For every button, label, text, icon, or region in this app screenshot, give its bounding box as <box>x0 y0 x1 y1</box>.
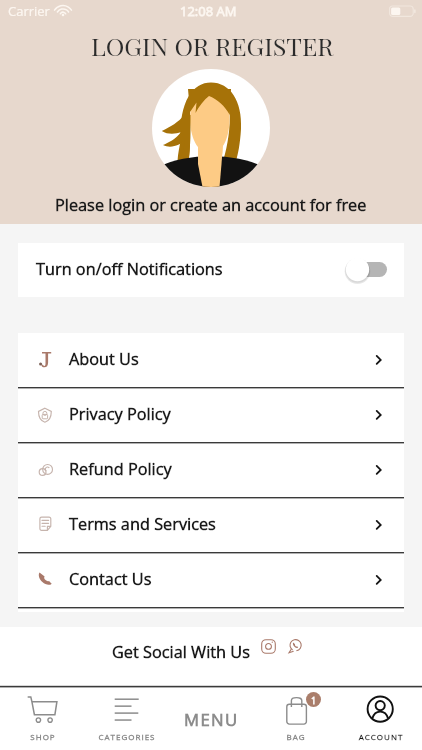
staticText: Please login or create an account for fr… <box>55 194 367 216</box>
button[interactable]: Privacy Policy <box>18 388 404 443</box>
button[interactable]: Instagram <box>261 639 276 654</box>
staticText: Carrier <box>8 2 50 20</box>
staticText: Turn on/off Notifications <box>36 258 223 280</box>
staticText: 1 <box>311 694 317 706</box>
button[interactable]: Refund Policy <box>18 443 404 498</box>
button[interactable]: Contact Us <box>18 553 404 608</box>
button[interactable]: WhatsApp <box>288 639 302 653</box>
staticText: ACCOUNT <box>339 731 422 742</box>
staticText: 12:08 AM <box>180 2 237 20</box>
staticText: SHOP <box>1 731 85 742</box>
staticText: About Us <box>69 348 139 370</box>
button[interactable]: MENU <box>169 685 253 750</box>
staticText: BAG <box>254 731 338 742</box>
staticText: LOGIN OR REGISTER <box>91 29 334 62</box>
button[interactable]: Turn on/off Notifications <box>18 243 404 297</box>
staticText: Get Social With Us <box>112 641 250 663</box>
button[interactable]: Notifications toggle <box>328 250 372 280</box>
staticText: MENU <box>184 708 239 731</box>
button[interactable]: Terms and Services <box>18 498 404 553</box>
staticText: Terms and Services <box>69 513 216 535</box>
button[interactable]: Shop <box>0 685 84 750</box>
staticText: Privacy Policy <box>69 403 171 425</box>
button[interactable]: Categories <box>84 685 168 750</box>
button[interactable]: About Us <box>18 333 404 388</box>
staticText: Contact Us <box>69 568 152 590</box>
button[interactable]: Bag <box>253 685 337 750</box>
button[interactable]: Account <box>338 685 422 750</box>
staticText: Refund Policy <box>69 458 172 480</box>
staticText: CATEGORIES <box>85 731 169 742</box>
